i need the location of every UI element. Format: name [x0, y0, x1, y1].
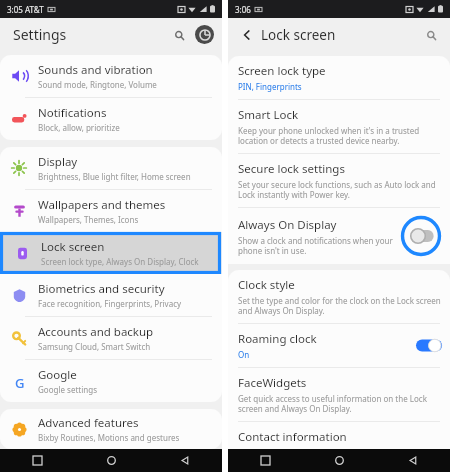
button[interactable]: Roaming clock [228, 324, 450, 367]
staticText: Lock screen [261, 26, 336, 44]
staticText: PIN, Fingerprints [238, 81, 302, 92]
button[interactable]: Accounts and backup [0, 317, 222, 359]
button[interactable]: Lock screen [3, 232, 221, 274]
button[interactable]: Toggle [416, 338, 442, 353]
staticText: Bixby Routines, Motions and gestures [38, 432, 180, 443]
button[interactable]: Search [168, 24, 190, 46]
staticText: Get quick access to useful information o… [238, 393, 442, 414]
button[interactable]: Advanced features [0, 409, 222, 449]
staticText: Sounds and vibration [38, 62, 153, 78]
staticText: 3:06 [235, 4, 251, 15]
staticText: Samsung Cloud, Smart Switch [38, 341, 151, 352]
button[interactable]: Home [74, 449, 148, 472]
staticText: Roaming clock [238, 331, 317, 347]
staticText: Notifications [38, 105, 107, 121]
staticText: 3:05 AT&T [7, 4, 44, 15]
staticText: Brightness, Blue light filter, Home scre… [38, 171, 191, 182]
button[interactable]: Search [421, 25, 441, 45]
staticText: Settings [13, 25, 67, 44]
staticText: Secure lock settings [238, 161, 345, 177]
staticText: On [238, 349, 250, 360]
button[interactable]: Lock screen [3, 232, 221, 274]
button[interactable]: Notifications [0, 98, 222, 140]
button[interactable]: Contact information [228, 422, 450, 449]
button[interactable]: Clock style [228, 270, 450, 323]
button[interactable]: Wallpapers and themes [0, 190, 222, 232]
staticText: Lock screen [41, 239, 105, 255]
button[interactable]: Home [302, 449, 376, 472]
staticText: FaceWidgets [238, 375, 307, 391]
button[interactable]: Smart Lock [228, 100, 450, 153]
staticText: Wallpapers and themes [38, 197, 166, 213]
staticText: Wallpapers, Themes, Icons [38, 214, 139, 225]
staticText: Display [38, 154, 78, 170]
staticText: Screen lock type [238, 63, 326, 79]
button[interactable]: Back [376, 449, 450, 472]
button[interactable]: Biometrics and security [0, 274, 222, 316]
staticText: Contact information [238, 429, 347, 442]
button[interactable]: Secure lock settings [228, 154, 450, 207]
staticText: Google [38, 367, 77, 383]
button[interactable]: Sounds and vibration [0, 55, 222, 97]
button[interactable]: FaceWidgets [228, 368, 450, 421]
button[interactable]: Recents [228, 449, 302, 472]
button[interactable]: Always On Display toggle [400, 215, 442, 257]
button[interactable]: Recents [0, 449, 74, 472]
staticText: Advanced features [38, 415, 139, 431]
staticText: Set the type and color for the clock on … [238, 295, 442, 316]
button[interactable]: Always On Display [228, 208, 450, 264]
staticText: Clock style [238, 277, 295, 293]
staticText: Sound mode, Ringtone, Volume [38, 79, 157, 90]
staticText: G [15, 374, 25, 389]
staticText: Biometrics and security [38, 281, 165, 297]
staticText: Smart Lock [238, 107, 299, 123]
staticText: Always On Display [238, 217, 337, 233]
button[interactable]: Back [238, 26, 256, 44]
staticText: Block, allow, prioritize [38, 122, 120, 133]
staticText: Keep your phone unlocked when it's in a … [238, 125, 442, 146]
staticText: Accounts and backup [38, 324, 154, 340]
staticText: Face recognition, Fingerprints, Privacy [38, 298, 182, 309]
button[interactable]: Display [0, 147, 222, 189]
staticText: Google settings [38, 384, 97, 395]
button[interactable]: Screen lock type [228, 56, 450, 99]
button[interactable]: Account [195, 25, 214, 44]
staticText: Screen lock type, Always On Display, Clo… [41, 256, 213, 267]
staticText: Show a clock and notifications when your… [238, 235, 396, 256]
staticText: Set your secure lock functions, such as … [238, 179, 442, 200]
button[interactable]: Back [148, 449, 222, 472]
button[interactable]: G [0, 360, 222, 402]
